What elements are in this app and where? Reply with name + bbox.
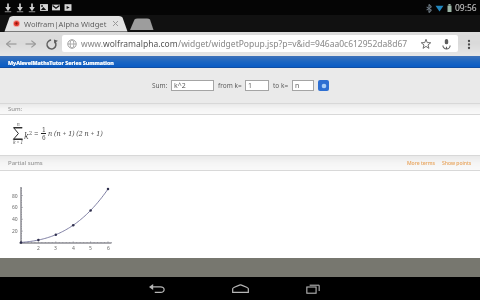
staticText: Partial sums xyxy=(8,159,43,167)
staticText: MyAlevelMathsTutor Series Summation xyxy=(8,59,114,66)
staticText: 60 xyxy=(12,204,18,211)
staticText: k^2 xyxy=(174,81,186,90)
button[interactable]: Wolfram|Alpha Widget xyxy=(5,15,131,32)
button[interactable]: Compute xyxy=(318,80,329,91)
staticText: 40 xyxy=(12,216,18,223)
button[interactable]: n xyxy=(293,81,313,90)
staticText: 2 xyxy=(37,245,40,252)
button[interactable]: Bookmark xyxy=(419,35,433,52)
staticText: to k= xyxy=(273,81,289,90)
button[interactable]: More terms xyxy=(407,160,435,167)
staticText: k xyxy=(24,130,29,141)
staticText: 4 xyxy=(72,245,75,252)
staticText: 3 xyxy=(54,245,57,252)
staticText: from k= xyxy=(218,81,242,90)
staticText: Sum: xyxy=(8,105,23,113)
button[interactable]: k^2 xyxy=(172,81,213,90)
staticText: n (n + 1) (2 n + 1) xyxy=(48,129,103,139)
button[interactable]: Recent apps xyxy=(296,277,330,300)
staticText: 2 xyxy=(29,129,33,136)
button[interactable]: Reload xyxy=(42,34,61,54)
staticText: 1 xyxy=(42,125,46,134)
staticText: 5 xyxy=(89,245,92,252)
staticText: 6 xyxy=(42,133,46,142)
staticText: k = 1 xyxy=(13,139,23,145)
button[interactable]: Back xyxy=(2,34,21,54)
staticText: n xyxy=(295,81,300,90)
button[interactable]: Home xyxy=(223,277,257,300)
button[interactable]: Forward xyxy=(21,34,40,54)
button[interactable]: Show points xyxy=(442,160,472,167)
staticText: 6 xyxy=(107,245,110,252)
staticText: Show points xyxy=(442,160,472,167)
button[interactable]: www. xyxy=(62,35,458,52)
button[interactable]: More options xyxy=(461,35,477,53)
staticText: /widget/widgetPopup.jsp?p=v&id=946aa0c61… xyxy=(178,38,408,50)
button[interactable]: Voice search xyxy=(438,35,454,52)
staticText: wolframalpha.com xyxy=(103,38,178,50)
staticText: 80 xyxy=(12,193,18,200)
button[interactable]: Close tab xyxy=(111,19,120,28)
staticText: 09:56 xyxy=(455,2,477,14)
staticText: www. xyxy=(81,38,103,50)
button[interactable]: Back xyxy=(140,277,174,300)
staticText: = xyxy=(34,128,39,139)
staticText: Wolfram|Alpha Widget xyxy=(24,19,107,29)
staticText: 1 xyxy=(248,81,253,90)
button[interactable]: 1 xyxy=(246,81,268,90)
staticText: 20 xyxy=(12,228,18,235)
staticText: More terms xyxy=(407,160,435,167)
button[interactable]: Second tab xyxy=(131,17,155,32)
staticText: Sum: xyxy=(152,81,168,90)
staticText: n xyxy=(17,121,20,127)
